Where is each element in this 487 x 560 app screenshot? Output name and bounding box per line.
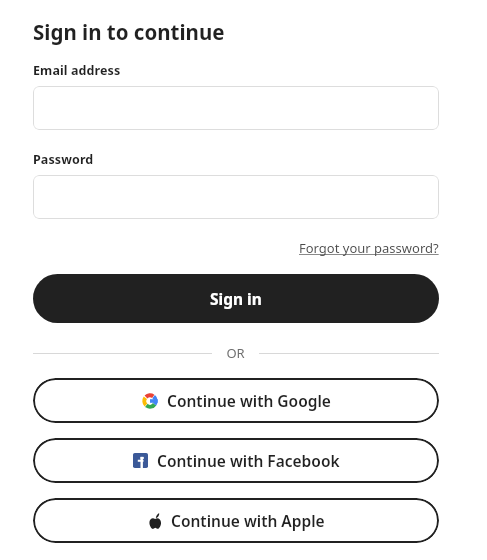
staticText: Continue with Facebook (157, 450, 340, 471)
staticText: Sign in (210, 288, 262, 309)
staticText: Continue with Google (167, 390, 331, 411)
button[interactable] (33, 175, 439, 219)
staticText: Email address (33, 62, 121, 79)
staticText: Forgot your password? (299, 239, 439, 257)
staticText: OR (226, 344, 245, 362)
button[interactable] (33, 86, 439, 130)
staticText: Password (33, 151, 94, 168)
button[interactable]: Forgot your password? (299, 239, 439, 257)
button[interactable]: Continue with Facebook (33, 438, 439, 483)
staticText: Sign in to continue (33, 18, 225, 46)
button[interactable]: Sign in (33, 274, 439, 323)
staticText: Continue with Apple (171, 510, 325, 531)
button[interactable]: Continue with Apple (33, 498, 439, 543)
button[interactable]: Continue with Google (33, 378, 439, 423)
